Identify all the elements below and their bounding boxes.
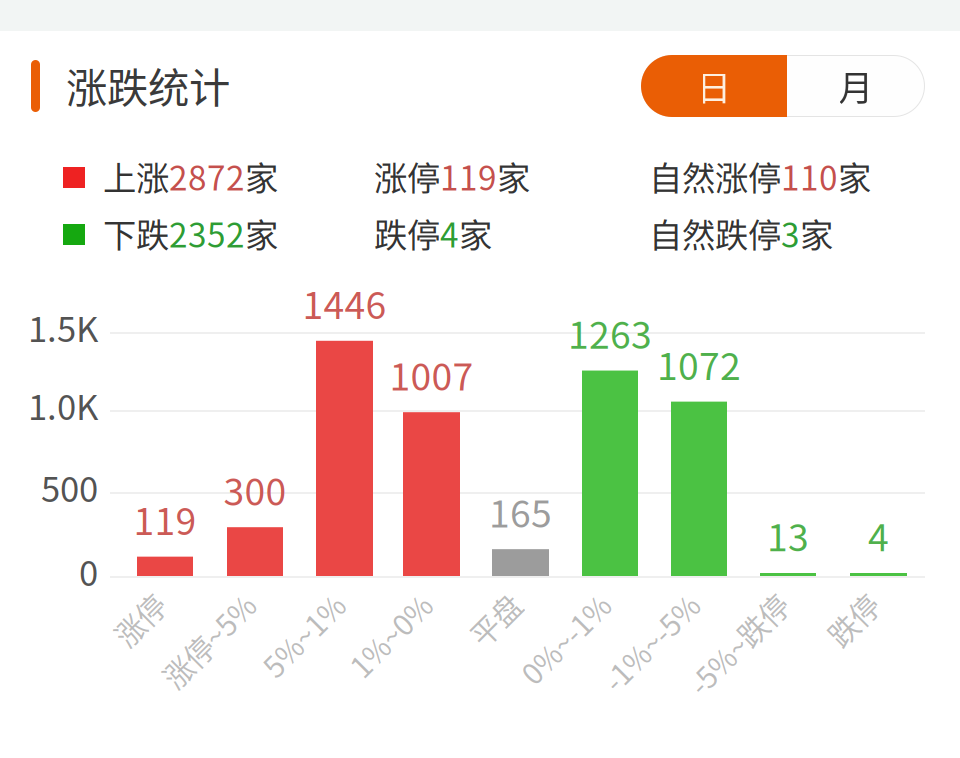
staticText: 1.0K xyxy=(28,380,98,430)
staticText: 家 xyxy=(800,209,833,257)
staticText: 165 xyxy=(489,484,552,538)
staticText: 119 xyxy=(133,492,196,546)
staticText: 日 xyxy=(696,61,731,111)
staticText: 家 xyxy=(838,152,871,200)
staticText: 1263 xyxy=(568,305,652,360)
staticText: 3 xyxy=(781,209,800,257)
staticText: 13 xyxy=(767,508,809,562)
staticText: 下跌 xyxy=(103,209,169,257)
staticText: 跌停 xyxy=(374,209,440,257)
staticText: 5%~1% xyxy=(222,584,324,626)
staticText: -5%~跌停 xyxy=(641,584,768,626)
staticText: 自然涨停 xyxy=(649,152,781,200)
staticText: -1%~-5% xyxy=(557,584,679,626)
staticText: 跌停 xyxy=(800,584,858,626)
staticText: 4 xyxy=(868,508,889,562)
staticText: 4 xyxy=(440,209,459,257)
staticText: 1007 xyxy=(389,347,473,401)
button[interactable]: 月 xyxy=(787,55,925,117)
staticText: 110 xyxy=(781,152,838,200)
staticText: 500 xyxy=(41,462,98,512)
staticText: 家 xyxy=(245,209,278,257)
staticText: 平盘 xyxy=(442,584,500,626)
staticText: 上涨 xyxy=(103,152,169,200)
staticText: 家 xyxy=(245,152,278,200)
staticText: 2352 xyxy=(169,209,245,257)
staticText: 1446 xyxy=(302,276,386,330)
staticText: 涨停 xyxy=(374,152,440,200)
staticText: 家 xyxy=(459,209,492,257)
staticText: 119 xyxy=(440,152,497,200)
staticText: 2872 xyxy=(169,152,245,200)
staticText: 自然跌停 xyxy=(649,209,781,257)
button[interactable]: 日 xyxy=(641,55,787,117)
staticText: 1072 xyxy=(657,337,741,391)
staticText: 300 xyxy=(223,462,286,516)
staticText: 1%~0% xyxy=(309,584,411,626)
staticText: 月 xyxy=(838,61,873,111)
staticText: 涨跌统计 xyxy=(66,55,230,115)
staticText: 1.5K xyxy=(28,302,98,352)
staticText: 0%~-1% xyxy=(478,584,590,626)
staticText: 0 xyxy=(79,546,98,596)
staticText: 涨停 xyxy=(87,584,145,626)
staticText: 涨停~5% xyxy=(118,584,235,626)
staticText: 家 xyxy=(497,152,530,200)
